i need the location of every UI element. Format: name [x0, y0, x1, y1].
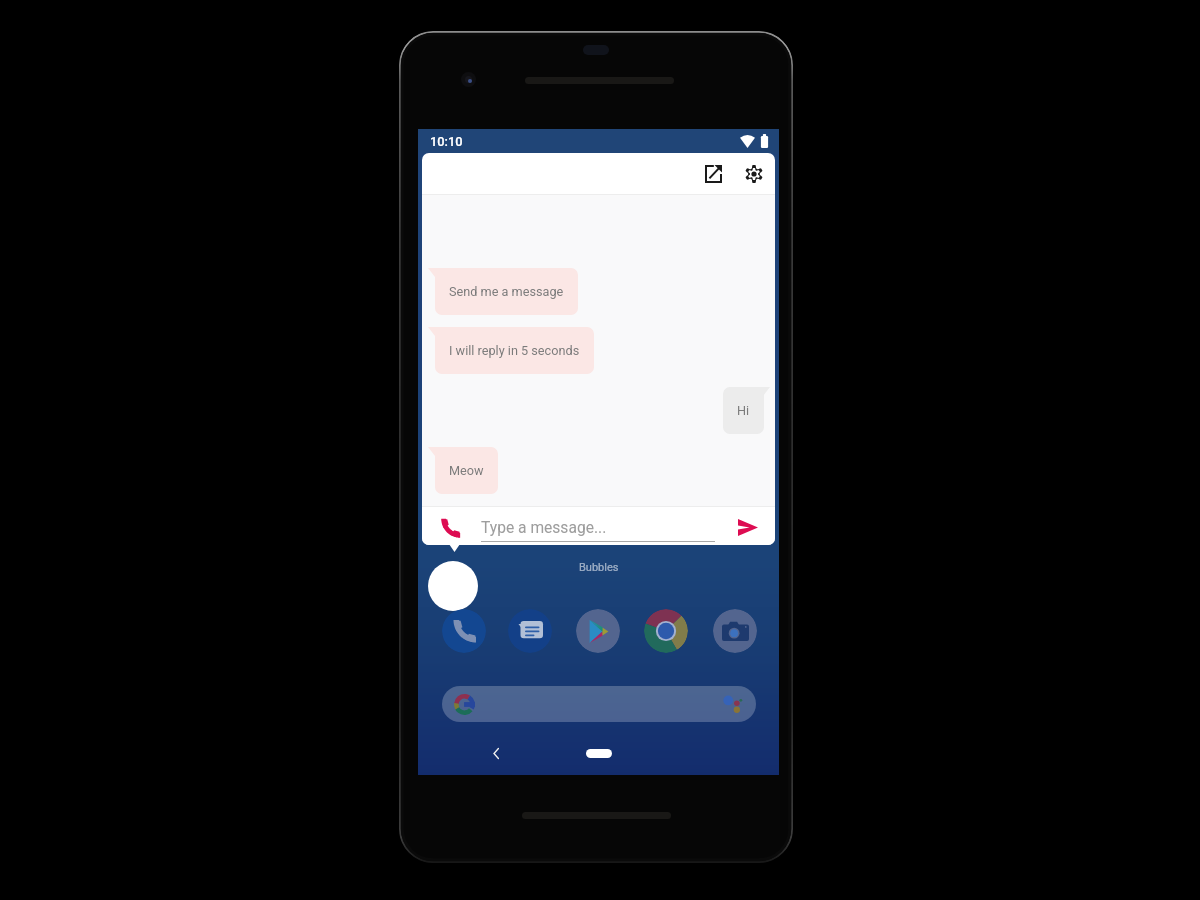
button[interactable]: Meow — [435, 447, 498, 494]
button[interactable]: Play Store — [576, 609, 620, 653]
staticText: Type a message... — [481, 519, 607, 537]
button[interactable]: Open in new window — [697, 158, 729, 190]
button[interactable]: Phone — [442, 609, 486, 653]
button[interactable]: Send me a message — [435, 268, 578, 315]
button[interactable]: Chrome — [644, 609, 688, 653]
button[interactable]: Bubbles chat bubble — [428, 561, 478, 611]
button[interactable]: Send — [736, 515, 760, 539]
button[interactable]: Messages — [508, 609, 552, 653]
staticText: Bubbles — [579, 561, 619, 574]
staticText: Meow — [449, 463, 484, 478]
button[interactable]: Home — [586, 749, 612, 758]
button[interactable]: Search — [442, 686, 756, 722]
staticText: Send me a message — [449, 284, 564, 299]
staticText: Hi — [737, 403, 750, 418]
button[interactable]: Settings — [738, 158, 770, 190]
button[interactable]: Call — [438, 516, 462, 540]
button[interactable]: Back — [484, 741, 508, 765]
button[interactable]: Hi — [723, 387, 764, 434]
button[interactable]: I will reply in 5 seconds — [435, 327, 594, 374]
button[interactable]: Camera — [713, 609, 757, 653]
staticText: 10:10 — [430, 134, 463, 149]
staticText: I will reply in 5 seconds — [449, 343, 580, 358]
